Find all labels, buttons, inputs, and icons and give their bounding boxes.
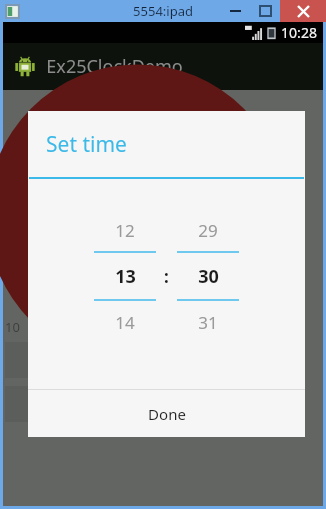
button[interactable]: Done [28,390,305,437]
staticText: 14 [115,311,135,334]
staticText: : [164,265,169,288]
button[interactable]: Minimize [220,0,250,22]
staticText: 13 [115,264,136,289]
staticText: 30 [198,264,219,289]
button[interactable] [5,386,39,422]
button[interactable]: Maximize [250,0,280,22]
button[interactable] [5,342,39,378]
staticText: Done [148,404,186,424]
staticText: 10 [5,318,20,336]
button[interactable]: Close [280,0,326,22]
staticText: 10:28 [281,23,317,42]
staticText: 31 [198,311,218,334]
button[interactable]: 12 [92,209,158,343]
staticText: 5554:ipad [133,2,193,20]
staticText: 29 [198,219,218,242]
staticText: Set time [46,130,127,159]
staticText: Ex25ClockDemo [46,54,183,79]
button[interactable]: 29 [175,209,241,343]
staticText: 12 [115,219,135,242]
